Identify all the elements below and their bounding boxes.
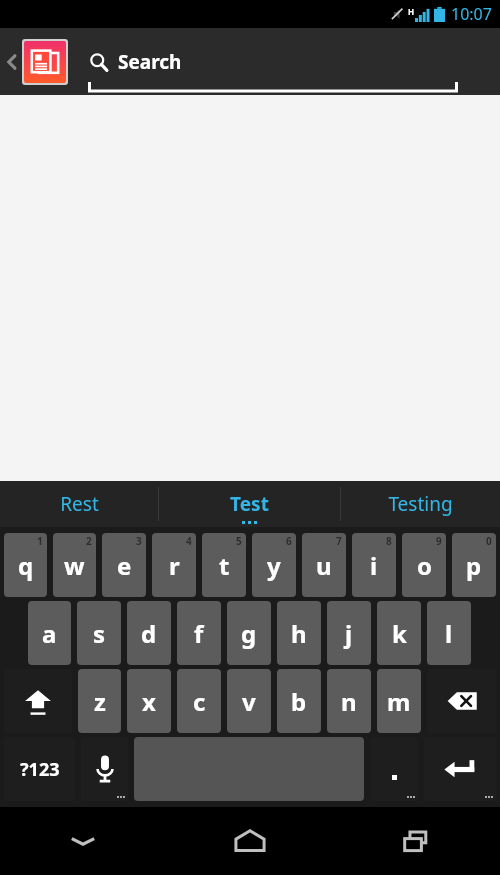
staticText: k <box>392 617 407 650</box>
button[interactable]: Rest <box>0 481 158 527</box>
button[interactable]: l <box>427 601 471 665</box>
staticText: m <box>387 685 411 718</box>
staticText: u <box>316 549 332 582</box>
staticText: 5 <box>236 534 242 548</box>
button[interactable]: u <box>302 533 346 597</box>
staticText: a <box>42 617 57 650</box>
button[interactable]: m <box>377 669 421 733</box>
staticText: b <box>291 685 307 718</box>
staticText: g <box>241 617 257 650</box>
button[interactable]: Testing <box>341 481 500 527</box>
staticText: 7 <box>336 534 342 548</box>
button[interactable]: y <box>252 533 296 597</box>
button[interactable]: Backspace <box>427 669 496 733</box>
button[interactable]: d <box>127 601 171 665</box>
button[interactable]: w <box>53 533 96 597</box>
button[interactable]: v <box>227 669 271 733</box>
staticText: e <box>117 549 132 582</box>
button[interactable]: i <box>352 533 396 597</box>
button[interactable]: f <box>177 601 221 665</box>
staticText: y <box>267 549 281 582</box>
button[interactable]: z <box>78 669 121 733</box>
staticText: h <box>291 617 307 650</box>
staticText: o <box>417 549 432 582</box>
staticText: q <box>18 549 34 582</box>
button[interactable]: ?123 <box>4 737 75 801</box>
button[interactable]: Enter <box>424 737 496 801</box>
button[interactable]: g <box>227 601 271 665</box>
button[interactable]: Back <box>0 39 72 85</box>
staticText: 10:07 <box>451 3 492 25</box>
staticText: x <box>142 685 156 718</box>
button[interactable]: k <box>377 601 421 665</box>
button[interactable]: o <box>402 533 446 597</box>
staticText: Rest <box>60 491 99 517</box>
button[interactable]: j <box>327 601 371 665</box>
staticText: 1 <box>37 534 43 548</box>
staticText: Test <box>230 491 269 517</box>
staticText: 2 <box>86 534 92 548</box>
button[interactable]: t <box>202 533 246 597</box>
staticText: 3 <box>136 534 142 548</box>
staticText: v <box>242 685 256 718</box>
staticText: 0 <box>486 534 492 548</box>
staticText: s <box>93 617 106 650</box>
staticText: n <box>341 685 357 718</box>
staticText: H <box>408 6 415 17</box>
button[interactable]: s <box>77 601 121 665</box>
staticText: ?123 <box>20 757 60 782</box>
button[interactable]: Test <box>159 481 340 527</box>
button[interactable]: Home <box>166 807 333 875</box>
staticText: l <box>445 617 453 650</box>
staticText: t <box>219 549 230 582</box>
staticText: p <box>466 549 482 582</box>
button[interactable]: a <box>28 601 71 665</box>
button[interactable]: Voice input <box>81 737 128 801</box>
button[interactable]: e <box>102 533 146 597</box>
button[interactable]: q <box>4 533 47 597</box>
button[interactable]: n <box>327 669 371 733</box>
staticText: w <box>64 549 85 582</box>
button[interactable]: Shift <box>4 669 72 733</box>
other: Back <box>4 49 20 75</box>
button[interactable]: Recent apps <box>333 807 500 875</box>
staticText: r <box>169 549 180 582</box>
button[interactable]: c <box>177 669 221 733</box>
button[interactable]: b <box>277 669 321 733</box>
button[interactable]: p <box>452 533 496 597</box>
button[interactable]: Hide keyboard <box>0 807 166 875</box>
staticText: j <box>345 617 353 650</box>
other: App icon <box>24 41 66 83</box>
staticText: 8 <box>386 534 392 548</box>
button[interactable]: h <box>277 601 321 665</box>
staticText: d <box>141 617 157 650</box>
button[interactable] <box>370 737 418 801</box>
button[interactable]: r <box>152 533 196 597</box>
staticText: c <box>193 685 206 718</box>
staticText: f <box>194 617 204 650</box>
staticText: 4 <box>186 534 192 548</box>
staticText: z <box>94 685 106 718</box>
staticText: Search <box>118 49 182 75</box>
button[interactable]: x <box>127 669 171 733</box>
staticText: i <box>370 549 378 582</box>
staticText: 6 <box>286 534 292 548</box>
staticText: 9 <box>436 534 442 548</box>
button[interactable]: Search <box>88 28 500 95</box>
staticText: Testing <box>388 491 453 517</box>
